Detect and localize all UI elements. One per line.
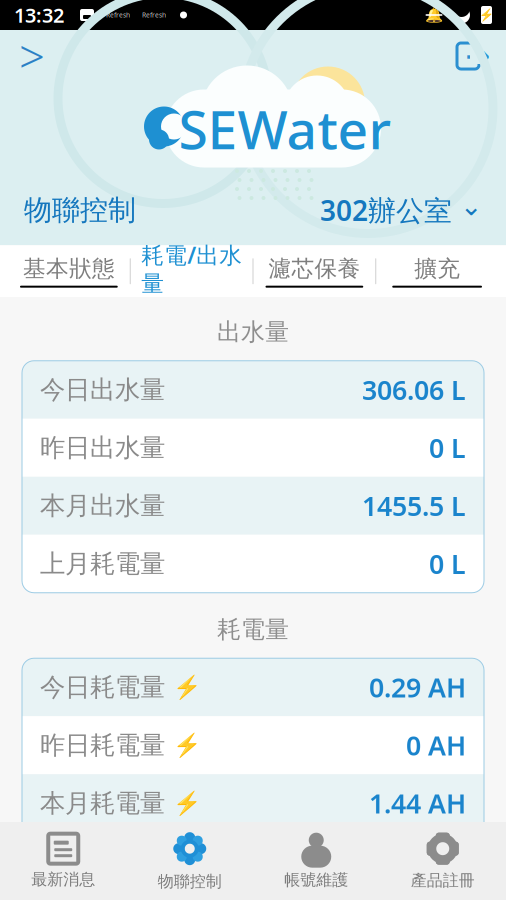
- button[interactable]: 帳號維護: [253, 822, 379, 900]
- staticText: Refresh: [142, 11, 166, 19]
- staticText: 🔔: [425, 7, 443, 23]
- staticText: 0 AH: [406, 727, 466, 763]
- staticText: ⚡: [173, 674, 201, 700]
- staticText: ⚡: [173, 848, 201, 874]
- button[interactable]: 物聯控制: [24, 193, 136, 227]
- staticText: 耗電量: [217, 615, 289, 644]
- staticText: →: [465, 39, 490, 73]
- staticText: 本月耗電量: [40, 788, 165, 819]
- staticText: 昨日耗電量: [40, 730, 165, 761]
- button[interactable]: 產品註冊: [379, 822, 506, 900]
- staticText: 出水量: [217, 317, 289, 347]
- staticText: 1455.5 L: [362, 488, 466, 523]
- button[interactable]: 基本狀態: [8, 255, 130, 288]
- staticText: 1.44 AH: [369, 785, 466, 821]
- button[interactable]: 物聯控制: [126, 822, 253, 900]
- staticText: 0 AH: [406, 843, 466, 879]
- staticText: ⌄: [460, 191, 482, 221]
- staticText: 306.06 L: [362, 372, 466, 407]
- staticText: ⚡: [173, 790, 201, 816]
- staticText: ⚡: [173, 732, 201, 758]
- button[interactable]: Log out: [452, 36, 496, 76]
- button[interactable]: 擴充: [376, 255, 498, 288]
- staticText: 物聯控制: [158, 872, 222, 891]
- staticText: 基本狀態: [23, 255, 115, 283]
- staticText: 今日耗電量: [40, 672, 165, 703]
- staticText: 濾芯保養: [268, 255, 360, 283]
- staticText: 擴充: [414, 255, 460, 283]
- staticText: ⚡: [479, 8, 494, 22]
- staticText: 產品註冊: [411, 871, 475, 890]
- staticText: 昨日出水量: [40, 432, 165, 463]
- staticText: 帳號維護: [284, 870, 348, 890]
- staticText: SEWater: [178, 93, 391, 164]
- staticText: >: [19, 26, 45, 86]
- button[interactable]: 最新消息: [0, 822, 126, 900]
- staticText: 302辦公室: [320, 191, 452, 229]
- staticText: 13:32: [14, 2, 64, 28]
- staticText: 本月出水量: [40, 490, 165, 521]
- staticText: 0 L: [429, 546, 466, 581]
- staticText: 今日出水量: [40, 374, 165, 405]
- staticText: Refresh: [106, 11, 130, 19]
- staticText: 物聯控制: [24, 193, 136, 227]
- button[interactable]: Back: [10, 36, 54, 76]
- staticText: 最新消息: [31, 870, 95, 889]
- button[interactable]: 302辦公室: [320, 191, 482, 229]
- button[interactable]: 耗電/出水量: [131, 240, 253, 303]
- staticText: 0 L: [429, 430, 466, 465]
- button[interactable]: 濾芯保養: [253, 255, 375, 288]
- staticText: 上月耗電量: [40, 548, 165, 579]
- staticText: 耗電/出水量: [141, 240, 242, 298]
- staticText: 上月耗電量: [40, 846, 165, 877]
- staticText: 0.29 AH: [369, 669, 466, 705]
